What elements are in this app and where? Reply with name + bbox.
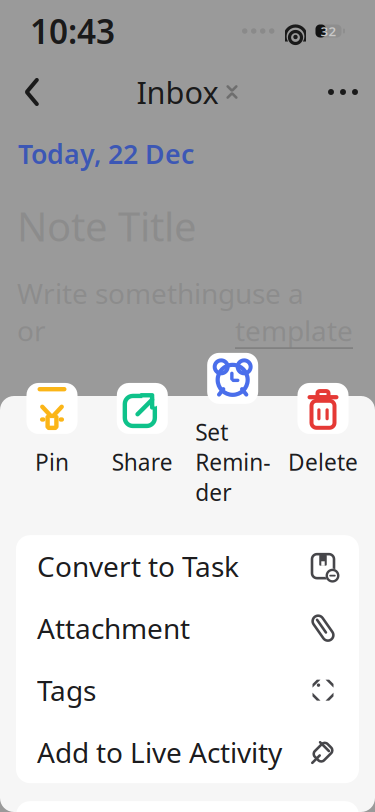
staticText: use a template xyxy=(235,274,353,349)
staticText: Delete xyxy=(288,447,358,477)
staticText: Attachment xyxy=(37,610,190,647)
button[interactable]: Share xyxy=(103,383,181,477)
button[interactable]: Attachment xyxy=(16,597,359,659)
staticText: Pin xyxy=(35,447,69,477)
staticText: Convert to Task xyxy=(37,548,239,585)
staticText: Write something or xyxy=(17,274,235,349)
button[interactable]: More options xyxy=(321,70,365,114)
button[interactable]: Convert to Task xyxy=(16,535,359,597)
staticText: 32 xyxy=(320,22,336,40)
staticText: Tags xyxy=(37,672,96,709)
staticText: Share xyxy=(112,447,173,477)
button[interactable]: Pin xyxy=(13,383,91,477)
button[interactable]: Back xyxy=(10,70,54,114)
staticText: Note Title xyxy=(17,199,197,252)
staticText: Add to Live Activity xyxy=(37,734,282,771)
staticText: Inbox xyxy=(136,72,218,112)
staticText: 10:43 xyxy=(30,9,115,53)
button[interactable]: Delete xyxy=(284,383,362,477)
button[interactable]: Inbox xyxy=(130,70,244,114)
button[interactable]: Tags xyxy=(16,659,359,721)
button[interactable]: Set Reminder xyxy=(194,353,272,507)
staticText: Today, 22 Dec xyxy=(18,136,194,171)
staticText: Set Reminder xyxy=(195,417,270,507)
button[interactable]: Add to Live Activity xyxy=(16,721,359,783)
